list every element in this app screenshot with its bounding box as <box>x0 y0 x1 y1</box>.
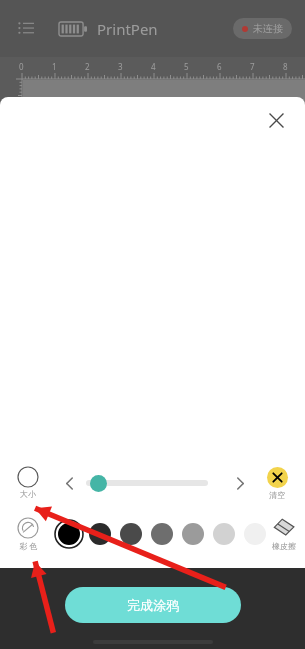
staticText: 6 <box>217 61 222 72</box>
staticText: 7 <box>250 61 255 72</box>
button[interactable]: Color 1 <box>85 519 115 549</box>
button[interactable]: Color 3 <box>147 519 177 549</box>
button[interactable]: Color 2 <box>116 519 146 549</box>
staticText: 未连接 <box>253 22 283 35</box>
button[interactable]: Color 5 <box>209 519 239 549</box>
staticText: 彩 色 <box>19 540 38 551</box>
button[interactable]: Decrease <box>58 472 80 494</box>
button[interactable]: Close <box>261 105 291 135</box>
staticText: 2 <box>85 61 90 72</box>
button[interactable]: Color 4 <box>178 519 208 549</box>
button[interactable]: 未连接 <box>233 18 292 39</box>
staticText: 8 <box>283 61 288 72</box>
button[interactable]: Color 0 <box>54 519 84 549</box>
staticText: 完成涂鸦 <box>127 597 179 613</box>
button[interactable]: Menu <box>13 16 39 42</box>
staticText: 4 <box>151 61 156 72</box>
staticText: 编辑 <box>32 95 100 138</box>
button[interactable]: Size slider <box>90 475 107 492</box>
staticText: 5 <box>184 61 189 72</box>
staticText: 橡皮擦 <box>272 541 296 551</box>
staticText: PrintPen <box>97 19 158 39</box>
staticText: 1 <box>52 61 57 72</box>
staticText: 清空 <box>269 490 285 500</box>
staticText: 大小 <box>20 489 36 499</box>
button[interactable]: Increase <box>229 472 251 494</box>
button[interactable]: 彩 色 <box>8 518 48 551</box>
button[interactable]: 完成涂鸦 <box>65 587 241 623</box>
staticText: 0 <box>19 61 24 72</box>
button[interactable]: 大小 <box>8 467 48 499</box>
staticText: 3 <box>118 61 123 72</box>
button[interactable]: Color 6 <box>240 519 270 549</box>
button[interactable]: 清空 <box>257 467 297 500</box>
button[interactable]: 橡皮擦 <box>270 517 297 551</box>
